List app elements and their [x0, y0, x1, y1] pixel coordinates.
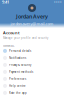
staticText: GENERAL — [3, 44, 14, 47]
button[interactable]: Notifications — [0, 54, 64, 61]
button[interactable]: Help centre — [0, 82, 64, 89]
button[interactable]: Personal details — [0, 47, 64, 54]
button[interactable]: Rate the app — [0, 89, 64, 96]
staticText: Rate the app — [9, 91, 27, 95]
button[interactable]: Preferences — [0, 75, 64, 82]
staticText: Personal details — [9, 49, 31, 53]
button[interactable]: Payment methods — [0, 68, 64, 75]
staticText: Privacy & security — [9, 63, 31, 67]
staticText: Help centre — [9, 84, 26, 88]
staticText: Notifications — [9, 56, 26, 60]
staticText: Manage your profile and security — [3, 36, 48, 40]
staticText: Jordan Avery — [16, 13, 48, 20]
staticText: Preferences — [9, 77, 26, 81]
staticText: •••• — [54, 0, 62, 5]
staticText: 9:41 — [2, 0, 9, 5]
staticText: Payment methods — [9, 70, 33, 74]
staticText: Account — [3, 30, 20, 35]
button[interactable]: Privacy & security — [0, 61, 64, 68]
staticText: jordan.avery@mail.com — [10, 21, 53, 26]
